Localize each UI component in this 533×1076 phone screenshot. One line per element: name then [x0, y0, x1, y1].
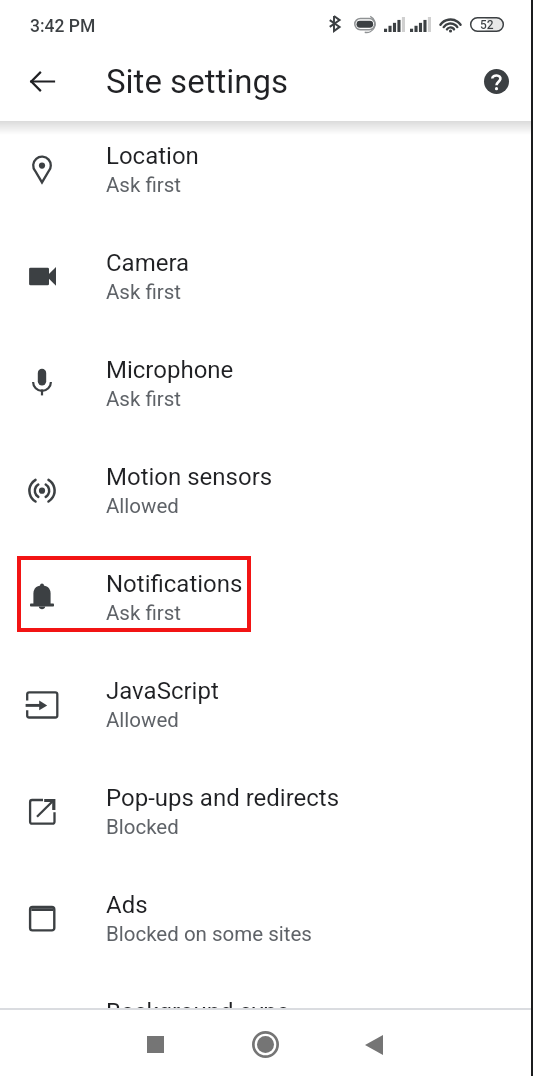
- staticText: Ask first: [106, 280, 182, 304]
- button[interactable]: Microphone: [0, 331, 533, 438]
- staticText: Notifications: [106, 570, 243, 598]
- button[interactable]: Location: [0, 117, 533, 224]
- button[interactable]: Recent apps: [125, 1014, 186, 1075]
- staticText: Location: [106, 142, 199, 170]
- button[interactable]: Motion sensors: [0, 438, 533, 545]
- staticText: 3:42 PM: [30, 16, 96, 37]
- staticText: Allowed: [106, 708, 179, 732]
- button[interactable]: Help and feedback: [471, 56, 521, 106]
- staticText: Camera: [106, 249, 190, 277]
- button[interactable]: Ads: [0, 866, 533, 973]
- staticText: Blocked on some sites: [106, 922, 312, 946]
- button[interactable]: Pop-ups and redirects: [0, 759, 533, 866]
- staticText: Allowed: [106, 494, 179, 518]
- staticText: Ask first: [106, 387, 182, 411]
- button[interactable]: Background sync: [0, 973, 533, 1008]
- staticText: Ads: [106, 891, 148, 919]
- button[interactable]: Back: [343, 1014, 404, 1075]
- button[interactable]: JavaScript: [0, 652, 533, 759]
- button[interactable]: Notifications: [0, 545, 533, 652]
- staticText: Microphone: [106, 356, 234, 384]
- staticText: Ask first: [106, 601, 182, 625]
- staticText: JavaScript: [106, 677, 219, 705]
- staticText: 52: [480, 18, 494, 32]
- button[interactable]: Navigate up: [17, 56, 67, 106]
- staticText: Motion sensors: [106, 463, 273, 491]
- staticText: Background sync: [106, 998, 290, 1008]
- button[interactable]: Camera: [0, 224, 533, 331]
- staticText: Pop-ups and redirects: [106, 784, 340, 812]
- staticText: Blocked: [106, 815, 179, 839]
- staticText: Ask first: [106, 173, 182, 197]
- staticText: Site settings: [106, 62, 289, 101]
- button[interactable]: Home: [235, 1014, 296, 1075]
